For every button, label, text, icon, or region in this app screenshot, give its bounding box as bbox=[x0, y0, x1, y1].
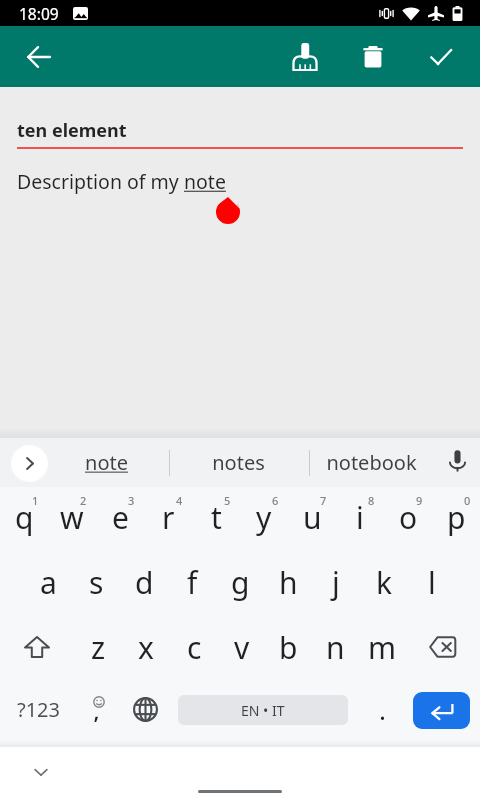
staticText: 5 bbox=[224, 493, 231, 508]
staticText: . bbox=[379, 692, 386, 727]
staticText: 3 bbox=[128, 493, 135, 508]
staticText: 4 bbox=[176, 493, 183, 508]
staticText: 1 bbox=[32, 493, 39, 508]
button[interactable]: EN • IT bbox=[178, 695, 348, 725]
button[interactable]: notebook bbox=[316, 438, 426, 487]
button[interactable]: . bbox=[357, 678, 407, 741]
staticText: f bbox=[187, 562, 198, 603]
staticText: 0 bbox=[464, 493, 471, 508]
button[interactable]: l bbox=[408, 552, 456, 615]
button[interactable]: 4 bbox=[144, 489, 192, 552]
staticText: t bbox=[211, 497, 222, 538]
button[interactable]: 8 bbox=[336, 489, 384, 552]
staticText: g bbox=[231, 562, 250, 603]
staticText: p bbox=[447, 497, 466, 538]
staticText: n bbox=[326, 627, 345, 668]
staticText: 9 bbox=[416, 493, 423, 508]
button[interactable]: Save bbox=[417, 33, 465, 81]
button[interactable]: h bbox=[264, 552, 312, 615]
button[interactable]: Emoji and comma bbox=[72, 678, 122, 741]
staticText: o bbox=[399, 497, 418, 538]
button[interactable]: n bbox=[312, 615, 359, 678]
staticText: notebook bbox=[326, 449, 417, 476]
staticText: ten element bbox=[17, 118, 127, 143]
staticText: h bbox=[279, 562, 298, 603]
staticText: b bbox=[279, 627, 298, 668]
staticText: 18:09 bbox=[19, 3, 59, 24]
button[interactable]: notes bbox=[183, 438, 293, 487]
button[interactable]: 6 bbox=[240, 489, 288, 552]
staticText: i bbox=[356, 497, 364, 538]
button[interactable]: Enter bbox=[413, 692, 470, 729]
staticText: d bbox=[135, 562, 154, 603]
staticText: ?123 bbox=[17, 696, 60, 723]
staticText: m bbox=[368, 627, 397, 668]
button[interactable]: Backspace bbox=[406, 615, 480, 678]
staticText: l bbox=[428, 562, 436, 603]
staticText: w bbox=[60, 497, 84, 538]
staticText: j bbox=[332, 562, 340, 603]
staticText: y bbox=[256, 497, 272, 538]
staticText: r bbox=[162, 497, 175, 538]
staticText: , bbox=[93, 692, 100, 722]
staticText: 7 bbox=[320, 493, 327, 508]
button[interactable]: g bbox=[216, 552, 264, 615]
button[interactable]: Voice input bbox=[441, 444, 474, 477]
staticText: k bbox=[376, 562, 393, 603]
staticText: q bbox=[15, 497, 34, 538]
staticText: e bbox=[112, 497, 129, 538]
staticText: a bbox=[40, 562, 57, 603]
button[interactable]: note bbox=[51, 438, 161, 487]
button[interactable]: 0 bbox=[432, 489, 480, 552]
staticText: notes bbox=[212, 449, 265, 476]
button[interactable]: b bbox=[265, 615, 312, 678]
button[interactable]: k bbox=[360, 552, 408, 615]
button[interactable]: z bbox=[74, 615, 122, 678]
button[interactable]: c bbox=[170, 615, 218, 678]
button[interactable]: v bbox=[218, 615, 265, 678]
button[interactable]: s bbox=[72, 552, 120, 615]
staticText: s bbox=[89, 562, 104, 603]
staticText: c bbox=[187, 627, 202, 668]
button[interactable]: d bbox=[120, 552, 168, 615]
staticText: EN • IT bbox=[241, 701, 285, 720]
button[interactable]: a bbox=[24, 552, 72, 615]
button[interactable]: 3 bbox=[96, 489, 144, 552]
staticText: 6 bbox=[272, 493, 279, 508]
button[interactable]: 9 bbox=[384, 489, 432, 552]
staticText: note bbox=[184, 168, 226, 195]
button[interactable]: 2 bbox=[48, 489, 96, 552]
button[interactable]: 5 bbox=[192, 489, 240, 552]
button[interactable]: j bbox=[312, 552, 360, 615]
staticText: Description of my bbox=[17, 168, 184, 195]
button[interactable]: Change language bbox=[120, 678, 170, 741]
staticText: note bbox=[85, 449, 128, 476]
button[interactable]: Hide keyboard bbox=[26, 757, 56, 787]
button[interactable]: 7 bbox=[288, 489, 336, 552]
button[interactable]: Shift bbox=[0, 615, 74, 678]
button[interactable]: m bbox=[359, 615, 406, 678]
button[interactable]: Delete bbox=[349, 33, 397, 81]
staticText: 2 bbox=[80, 493, 87, 508]
button[interactable]: More suggestions bbox=[11, 445, 48, 482]
button[interactable]: ?123 bbox=[6, 678, 70, 741]
staticText: x bbox=[138, 627, 154, 668]
button[interactable]: Clean formatting bbox=[281, 33, 329, 81]
staticText: z bbox=[91, 627, 106, 668]
button[interactable]: 1 bbox=[0, 489, 48, 552]
button[interactable]: f bbox=[168, 552, 216, 615]
staticText: v bbox=[234, 627, 250, 668]
button[interactable]: Back bbox=[15, 33, 63, 81]
staticText: 8 bbox=[368, 493, 375, 508]
button[interactable]: x bbox=[122, 615, 170, 678]
staticText: u bbox=[303, 497, 322, 538]
